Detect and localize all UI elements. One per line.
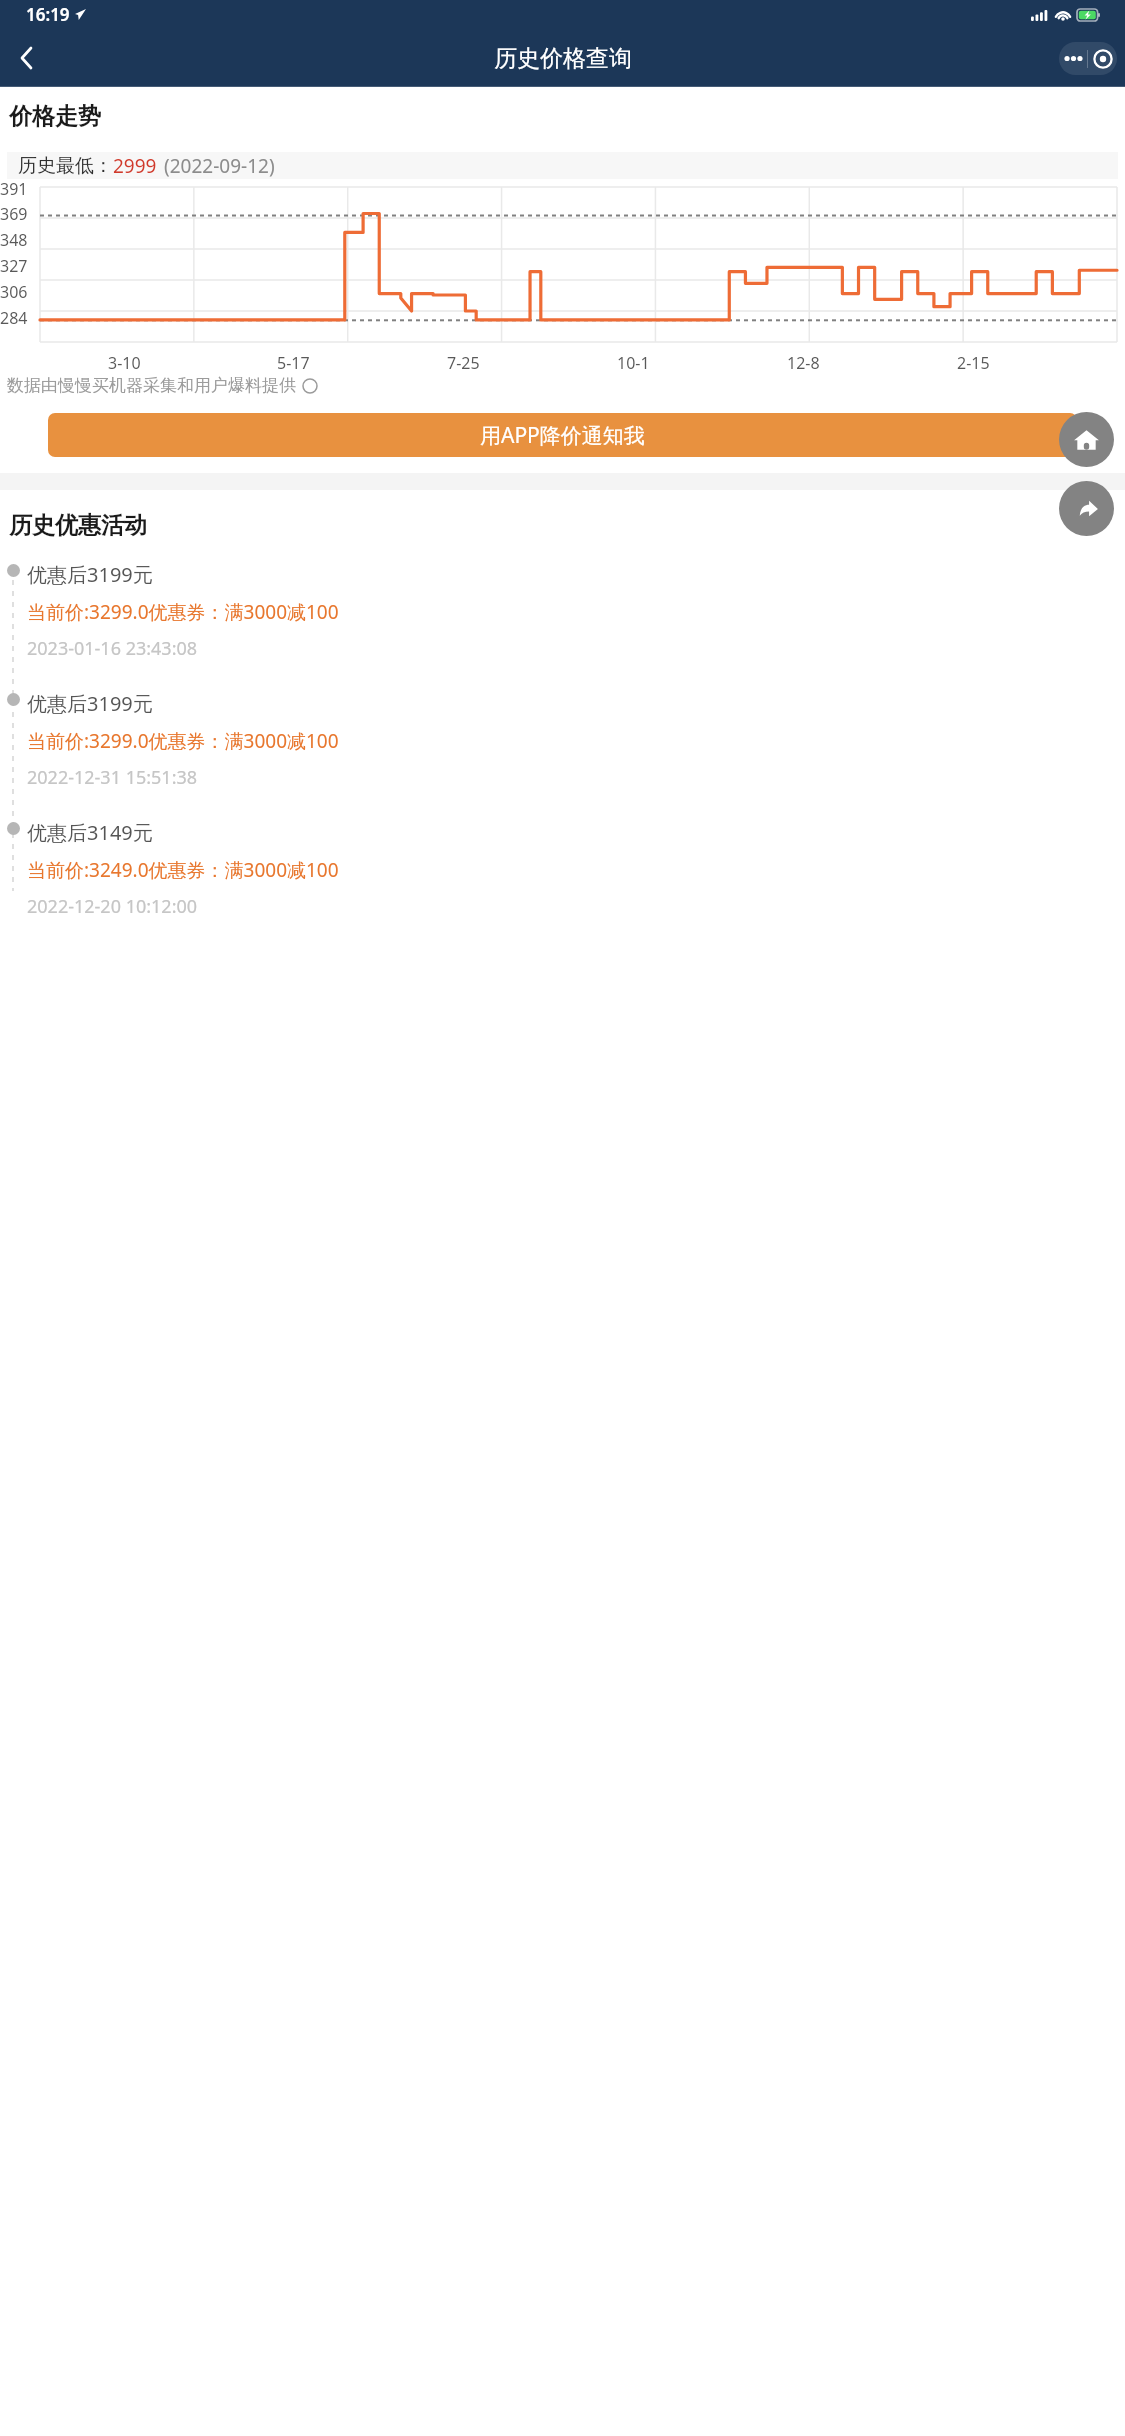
staticText: 2-15 [957, 352, 990, 374]
staticText: 3-10 [108, 352, 141, 374]
staticText: 用APP降价通知我 [480, 421, 645, 450]
staticText: 10-1 [617, 352, 650, 374]
staticText: 2022-12-31 15:51:38 [27, 765, 198, 790]
staticText: 3912 [0, 178, 34, 203]
staticText: 3060 [0, 281, 34, 307]
staticText: 2023-01-16 23:43:08 [27, 636, 198, 661]
staticText: 2999 [113, 153, 157, 179]
staticText: 数据由慢慢买机器采集和用户爆料提供 [7, 375, 296, 396]
button[interactable]: 优惠后3199元 [0, 561, 1125, 661]
staticText: 5-17 [277, 352, 310, 374]
staticText: 2847 [0, 307, 34, 333]
staticText: 2022-12-20 10:12:00 [27, 894, 198, 919]
staticText: 历史最低： [18, 154, 113, 178]
staticText: 价格走势 [9, 102, 101, 131]
button[interactable]: Share [1059, 481, 1114, 536]
staticText: 优惠后3199元 [27, 561, 153, 588]
button[interactable]: 优惠后3199元 [0, 690, 1125, 790]
button[interactable]: 用APP降价通知我 [48, 413, 1077, 457]
button[interactable]: More [1059, 42, 1087, 75]
button[interactable]: Close [1088, 42, 1117, 75]
staticText: 3273 [0, 255, 34, 281]
staticText: 7-25 [447, 352, 480, 374]
staticText: (2022-09-12) [164, 153, 275, 179]
staticText: 12-8 [787, 352, 820, 374]
staticText: 优惠后3199元 [27, 690, 153, 717]
staticText: 3699 [0, 203, 34, 229]
button[interactable]: Back [0, 29, 52, 87]
staticText: 历史优惠活动 [9, 511, 147, 540]
staticText: 当前价:3299.0优惠券：满3000减100 [27, 599, 339, 625]
staticText: 当前价:3299.0优惠券：满3000减100 [27, 728, 339, 754]
staticText: 优惠后3149元 [27, 819, 153, 846]
staticText: 16:19 [26, 3, 70, 26]
staticText: 历史价格查询 [494, 44, 632, 73]
button[interactable]: 优惠后3149元 [0, 819, 1125, 919]
staticText: 当前价:3249.0优惠券：满3000减100 [27, 857, 339, 883]
staticText: 3486 [0, 229, 34, 255]
button[interactable]: Home [1059, 412, 1114, 467]
